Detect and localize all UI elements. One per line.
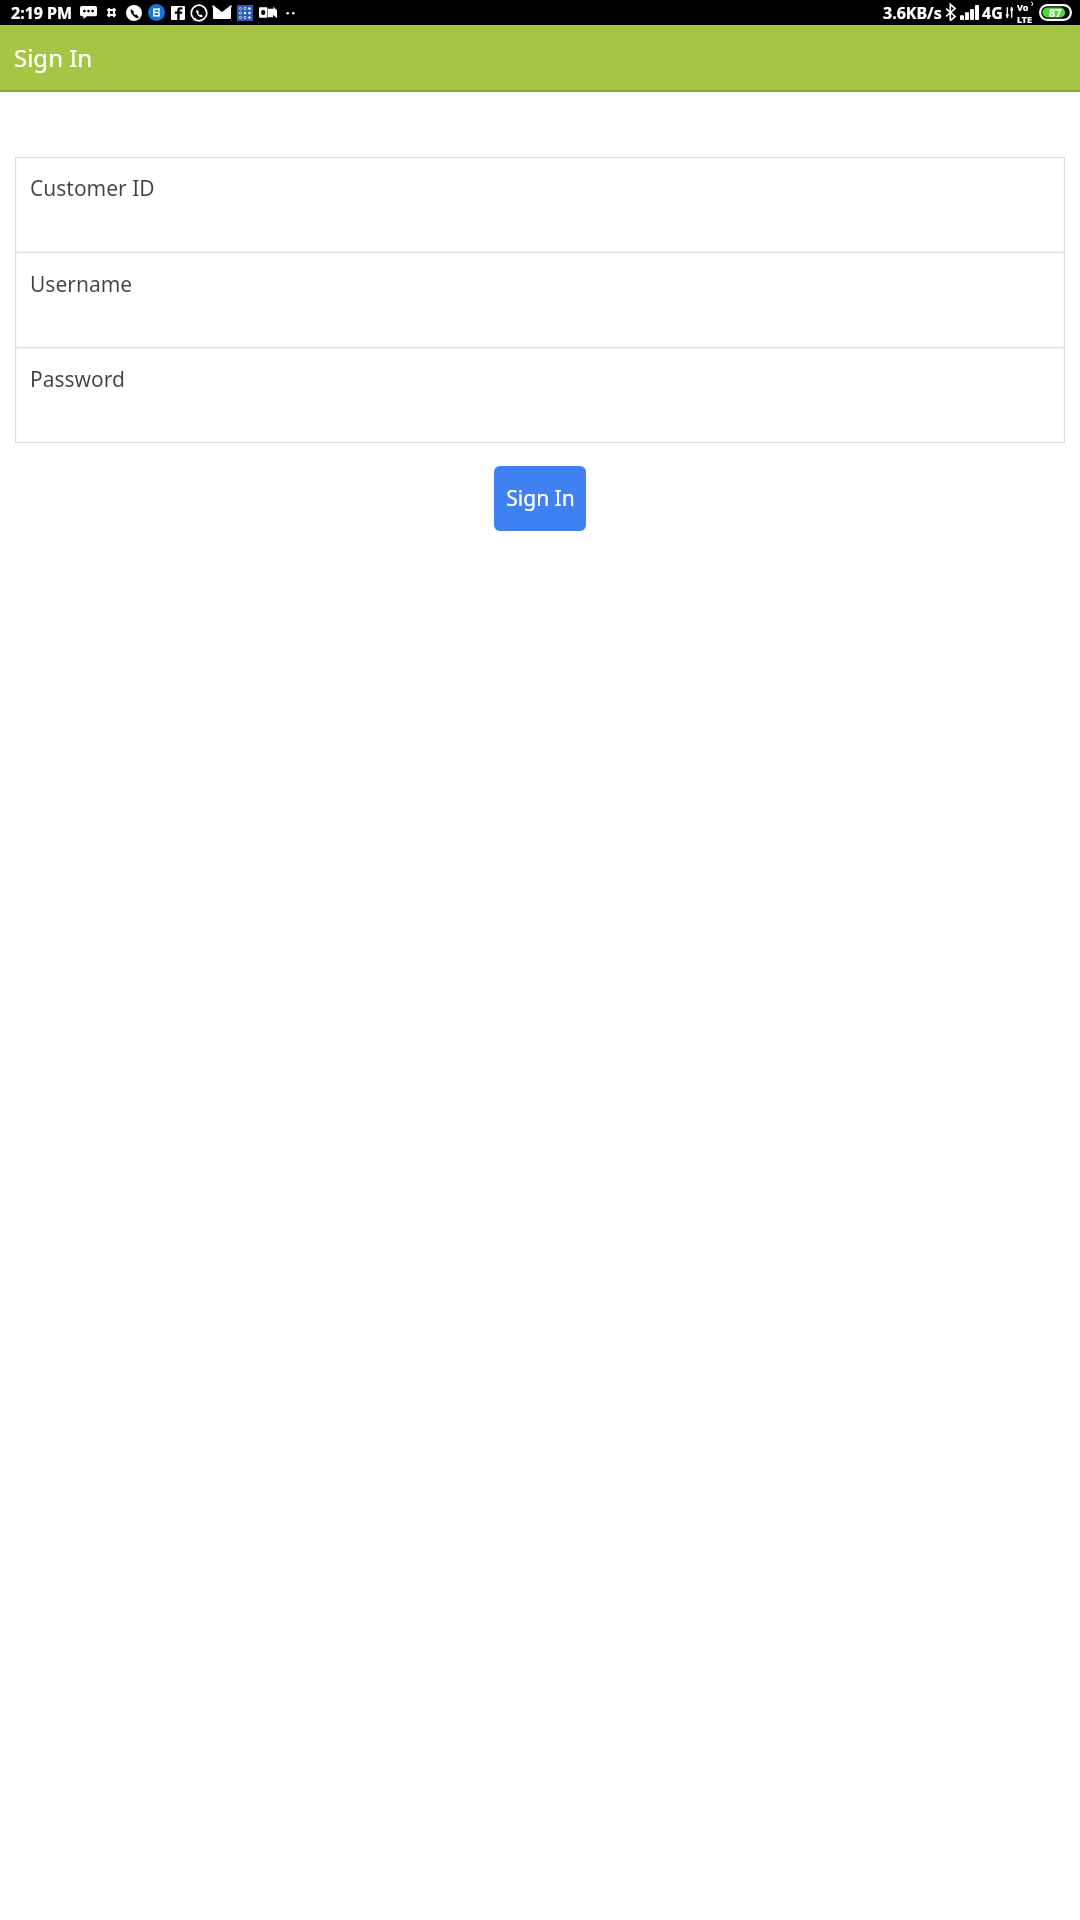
button[interactable]: Password [15,348,1065,443]
staticText: 87 [1049,5,1062,20]
staticText: Username [30,270,133,299]
staticText: Customer ID [30,174,155,203]
staticText: Sign In [14,41,93,74]
staticText: Password [30,365,125,394]
staticText: LTE [1017,13,1033,25]
button[interactable]: Username [15,253,1065,348]
staticText: Vo [1017,1,1029,13]
staticText: Sign In [506,484,575,513]
staticText: 2:19 PM [11,2,73,24]
staticText: 4G [982,2,1003,24]
button[interactable]: Sign In [494,466,586,531]
button[interactable]: Customer ID [15,157,1065,253]
staticText: 3.6KB/s [883,2,942,24]
